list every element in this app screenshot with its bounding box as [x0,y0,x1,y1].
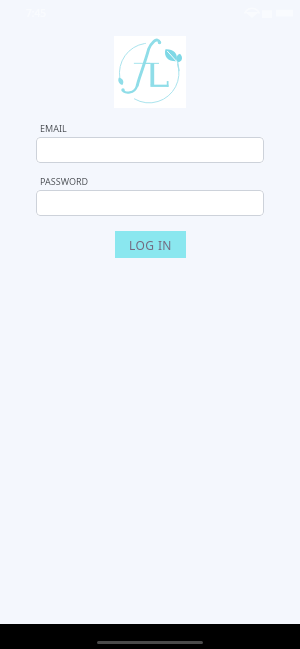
staticText: LOG IN [129,237,172,253]
button[interactable]: Home [97,641,203,644]
staticText: PASSWORD [40,175,89,187]
staticText: EMAIL [40,122,67,134]
button[interactable]: LOG IN [115,231,186,258]
button[interactable] [36,137,264,163]
button[interactable] [36,190,264,216]
